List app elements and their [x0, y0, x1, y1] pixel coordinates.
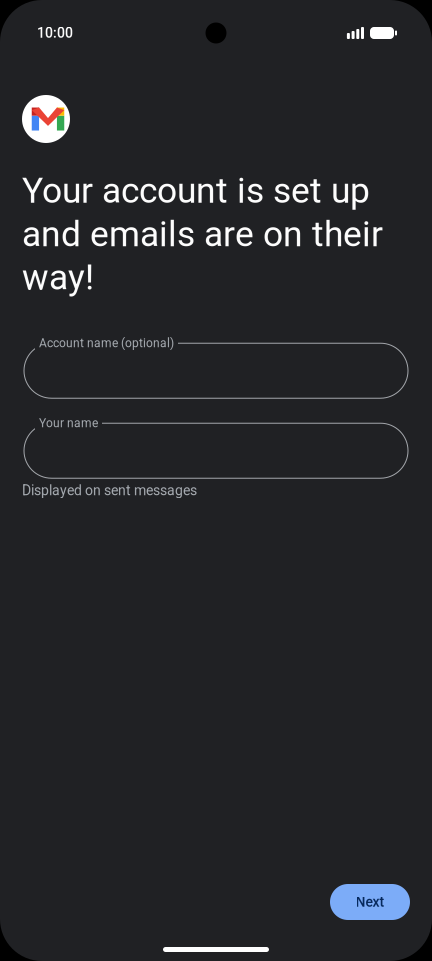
- staticText: Your account is set up and emails are on…: [22, 170, 383, 298]
- button[interactable]: Next: [330, 884, 410, 920]
- staticText: Account name (optional): [39, 336, 174, 350]
- staticText: 10:00: [37, 25, 73, 41]
- staticText: Your name: [39, 416, 98, 430]
- staticText: Displayed on sent messages: [22, 482, 197, 499]
- staticText: Next: [355, 894, 384, 910]
